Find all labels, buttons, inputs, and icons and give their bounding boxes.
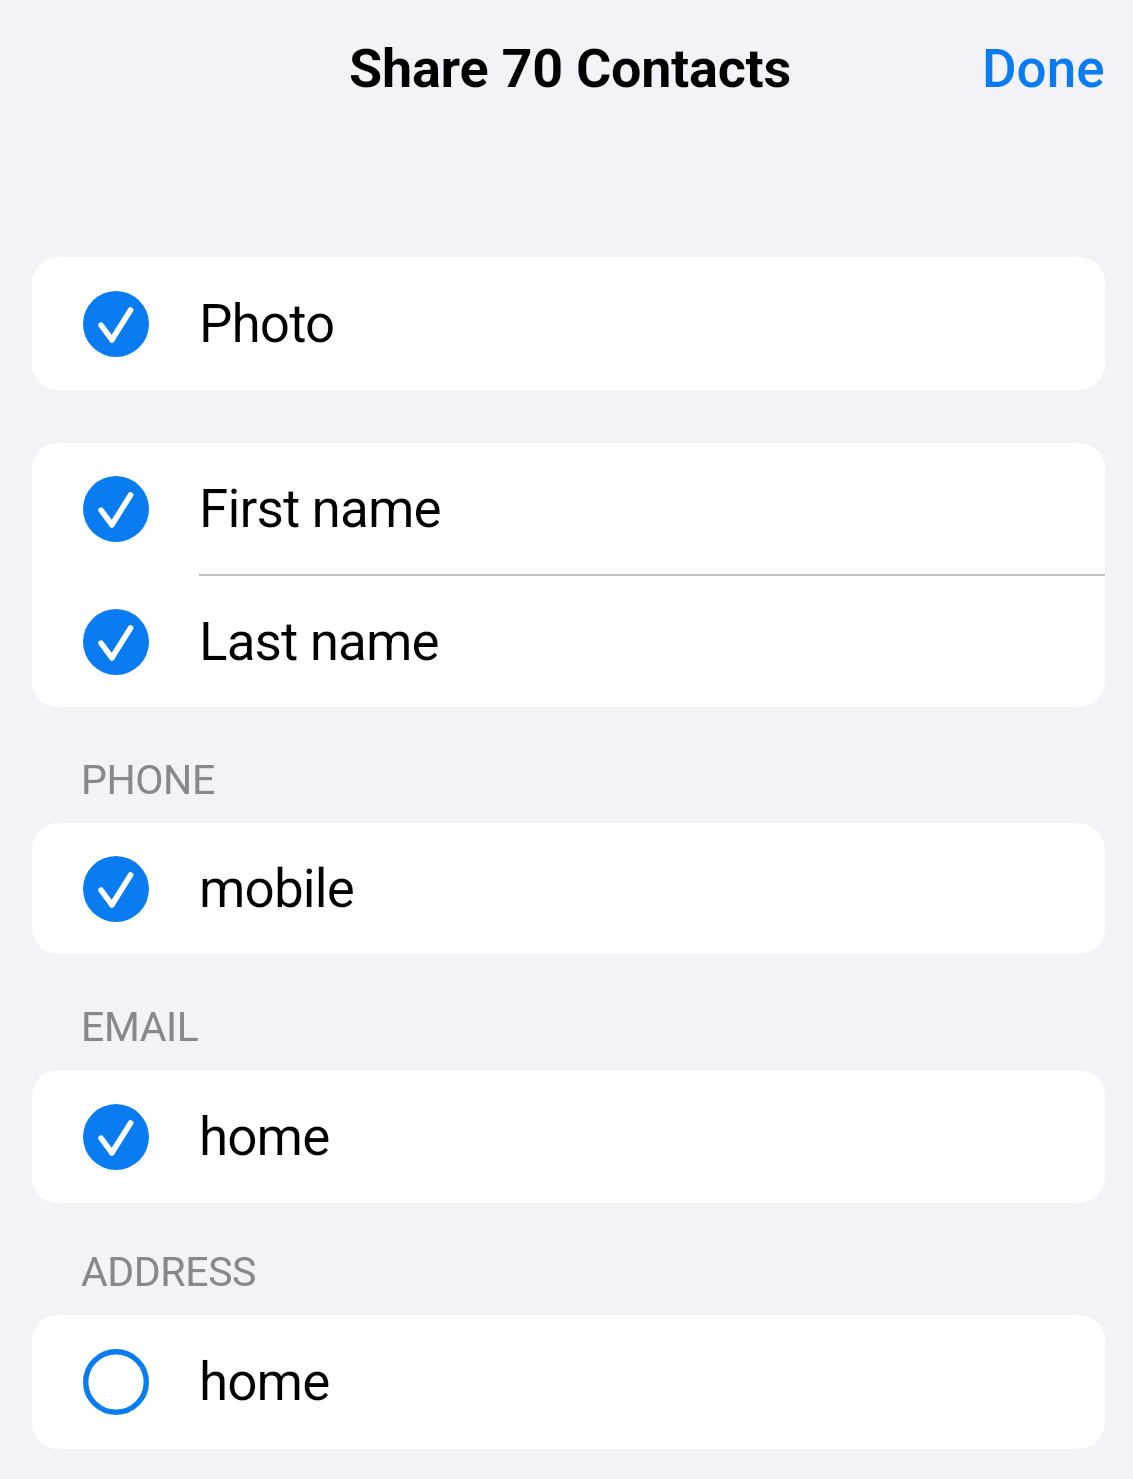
staticText: Share 70 Contacts [349, 37, 791, 100]
button[interactable]: home [32, 1315, 1105, 1449]
staticText: PHONE [81, 756, 215, 804]
button[interactable]: First name [32, 443, 1105, 574]
staticText: EMAIL [81, 1003, 199, 1051]
staticText: home [199, 1106, 330, 1168]
button[interactable]: Photo [32, 257, 1105, 390]
staticText: Done [982, 38, 1105, 100]
staticText: Last name [199, 611, 439, 673]
button[interactable]: Done [954, 26, 1133, 112]
button[interactable]: Last name [32, 576, 1105, 707]
staticText: Photo [199, 293, 335, 355]
button[interactable]: mobile [32, 823, 1105, 954]
staticText: ADDRESS [81, 1248, 257, 1296]
button[interactable]: home [32, 1070, 1105, 1203]
staticText: home [199, 1351, 330, 1413]
staticText: mobile [199, 858, 354, 920]
staticText: First name [199, 478, 441, 540]
